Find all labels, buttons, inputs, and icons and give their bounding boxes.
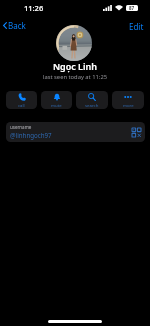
staticText: last seen today at 11:25 xyxy=(0,73,150,81)
button[interactable]: username xyxy=(6,122,145,142)
staticText: @linhngoch97 xyxy=(10,131,52,139)
button[interactable]: QR code xyxy=(132,128,141,137)
staticText: 11:26 xyxy=(24,3,44,13)
staticText: Back xyxy=(8,20,26,31)
button[interactable]: Back xyxy=(2,19,27,32)
button[interactable]: search xyxy=(76,91,108,109)
staticText: username xyxy=(10,124,32,130)
button[interactable]: call xyxy=(6,91,37,109)
staticText: Edit xyxy=(129,21,144,32)
staticText: mute xyxy=(51,102,62,108)
button[interactable]: more xyxy=(112,91,144,109)
staticText: 87 xyxy=(129,5,135,11)
button[interactable]: Edit xyxy=(128,20,145,33)
staticText: more xyxy=(123,102,134,108)
staticText: search xyxy=(85,102,99,108)
button[interactable]: mute xyxy=(41,91,72,109)
staticText: call xyxy=(18,102,25,108)
staticText: Ngọc Linh xyxy=(0,60,150,72)
